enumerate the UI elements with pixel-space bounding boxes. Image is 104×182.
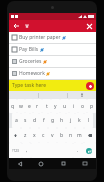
staticText: t: [46, 103, 48, 110]
staticText: o: [81, 103, 85, 110]
button[interactable]: l: [84, 113, 93, 128]
staticText: Type task here: [12, 82, 47, 89]
staticText: a: [15, 117, 18, 124]
staticText: p: [90, 103, 94, 110]
button[interactable]: .: [73, 143, 82, 158]
button[interactable]: i: [69, 99, 78, 113]
button[interactable]: g: [48, 113, 57, 128]
staticText: z: [24, 132, 27, 139]
staticText: x: [33, 132, 36, 139]
button[interactable]: b: [57, 128, 66, 143]
button[interactable]: d: [30, 113, 39, 128]
staticText: y: [54, 103, 57, 110]
button[interactable]: w: [17, 99, 25, 113]
button[interactable]: Enter: [82, 143, 96, 158]
button[interactable]: k: [75, 113, 84, 128]
staticText: v: [51, 132, 54, 139]
button[interactable]: Recent apps: [52, 158, 74, 169]
staticText: i: [73, 103, 75, 110]
staticText: k: [78, 117, 81, 124]
staticText: m: [77, 132, 82, 139]
button[interactable]: Shift: [9, 128, 21, 143]
staticText: Groceries: [19, 58, 42, 65]
button[interactable]: Back: [9, 158, 30, 169]
button[interactable]: Pay Bills: [9, 44, 96, 55]
button[interactable]: s: [21, 113, 30, 128]
button[interactable]: Type task here: [9, 80, 96, 91]
staticText: w: [19, 103, 23, 110]
staticText: .: [77, 147, 79, 154]
button[interactable]: Close: [84, 21, 94, 31]
staticText: r: [36, 103, 39, 110]
staticText: Pay Bills: [19, 46, 39, 53]
button[interactable]: Voice input: [68, 91, 96, 99]
staticText: c: [42, 132, 45, 139]
button[interactable]: a: [12, 113, 21, 128]
button[interactable]: t: [42, 99, 51, 113]
staticText: u: [63, 103, 67, 110]
button[interactable]: q: [9, 99, 17, 113]
staticText: b: [60, 132, 64, 139]
button[interactable]: Back: [11, 21, 21, 31]
button[interactable]: ,: [22, 143, 31, 158]
staticText: l: [88, 117, 90, 124]
button[interactable]: v: [48, 128, 57, 143]
staticText: Buy printer paper: [19, 34, 61, 41]
button[interactable]: o: [78, 99, 87, 113]
staticText: h: [60, 117, 64, 124]
staticText: e: [28, 103, 31, 110]
staticText: s: [24, 117, 27, 124]
button[interactable]: Delete: [22, 21, 32, 31]
button[interactable]: u: [60, 99, 69, 113]
button[interactable]: Backspace: [84, 128, 96, 143]
staticText: n: [69, 132, 73, 139]
button[interactable]: y: [51, 99, 60, 113]
staticText: ,: [26, 147, 28, 154]
staticText: d: [33, 117, 37, 124]
staticText: q: [11, 103, 15, 110]
button[interactable]: m: [75, 128, 84, 143]
button[interactable]: z: [21, 128, 30, 143]
button[interactable]: c: [39, 128, 48, 143]
button[interactable]: Hide keyboard: [74, 158, 96, 169]
button[interactable]: Homework: [9, 68, 96, 79]
button[interactable]: Buy printer paper: [9, 32, 96, 43]
button[interactable]: ?123: [9, 143, 22, 158]
button[interactable]: e: [25, 99, 33, 113]
button[interactable]: Groceries: [9, 56, 96, 67]
button[interactable]: Add task: [86, 82, 94, 90]
button[interactable]: p: [87, 99, 96, 113]
button[interactable]: r: [33, 99, 42, 113]
staticText: f: [43, 117, 45, 124]
button[interactable]: x: [30, 128, 39, 143]
staticText: g: [51, 117, 55, 124]
button[interactable]: n: [66, 128, 75, 143]
staticText: Homework: [19, 70, 45, 77]
button[interactable]: j: [66, 113, 75, 128]
button[interactable]: f: [39, 113, 48, 128]
button[interactable]: Home: [30, 158, 52, 169]
staticText: ?123: [12, 149, 19, 153]
button[interactable]: h: [57, 113, 66, 128]
staticText: j: [70, 117, 72, 124]
